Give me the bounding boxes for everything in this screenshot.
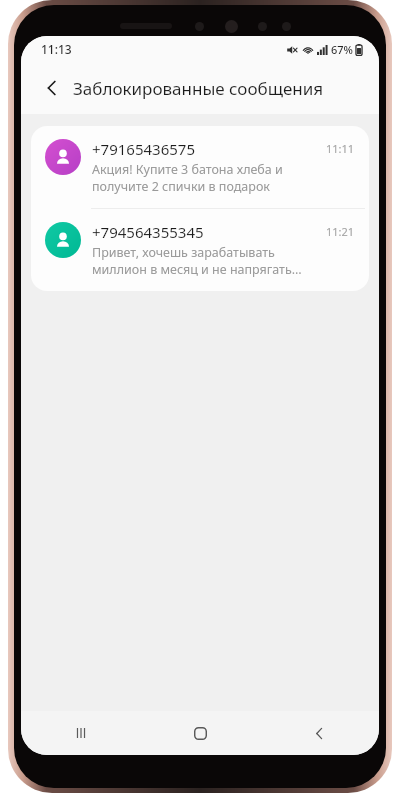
staticText: 11:21 <box>326 224 355 239</box>
staticText: +79165436575 <box>92 139 195 159</box>
staticText: получите 2 спички в подарок <box>92 178 270 195</box>
staticText: миллион в месяц и не напрягать… <box>92 261 302 278</box>
staticText: Акция! Купите 3 батона хлеба и <box>92 161 283 178</box>
staticText: Привет, хочешь зарабатывать <box>92 244 275 261</box>
staticText: 67% <box>331 42 353 57</box>
staticText: 11:13 <box>41 41 72 57</box>
button[interactable]: Home <box>141 711 260 755</box>
staticText: Заблокированные сообщения <box>73 77 324 100</box>
button[interactable]: Back <box>35 71 69 105</box>
button[interactable]: Recents <box>21 711 141 755</box>
button[interactable]: +79165436575 <box>31 126 369 208</box>
staticText: +794564355345 <box>92 222 204 242</box>
button[interactable]: +794564355345 <box>31 209 369 291</box>
button[interactable]: Back <box>260 711 379 755</box>
staticText: 11:11 <box>326 141 355 156</box>
